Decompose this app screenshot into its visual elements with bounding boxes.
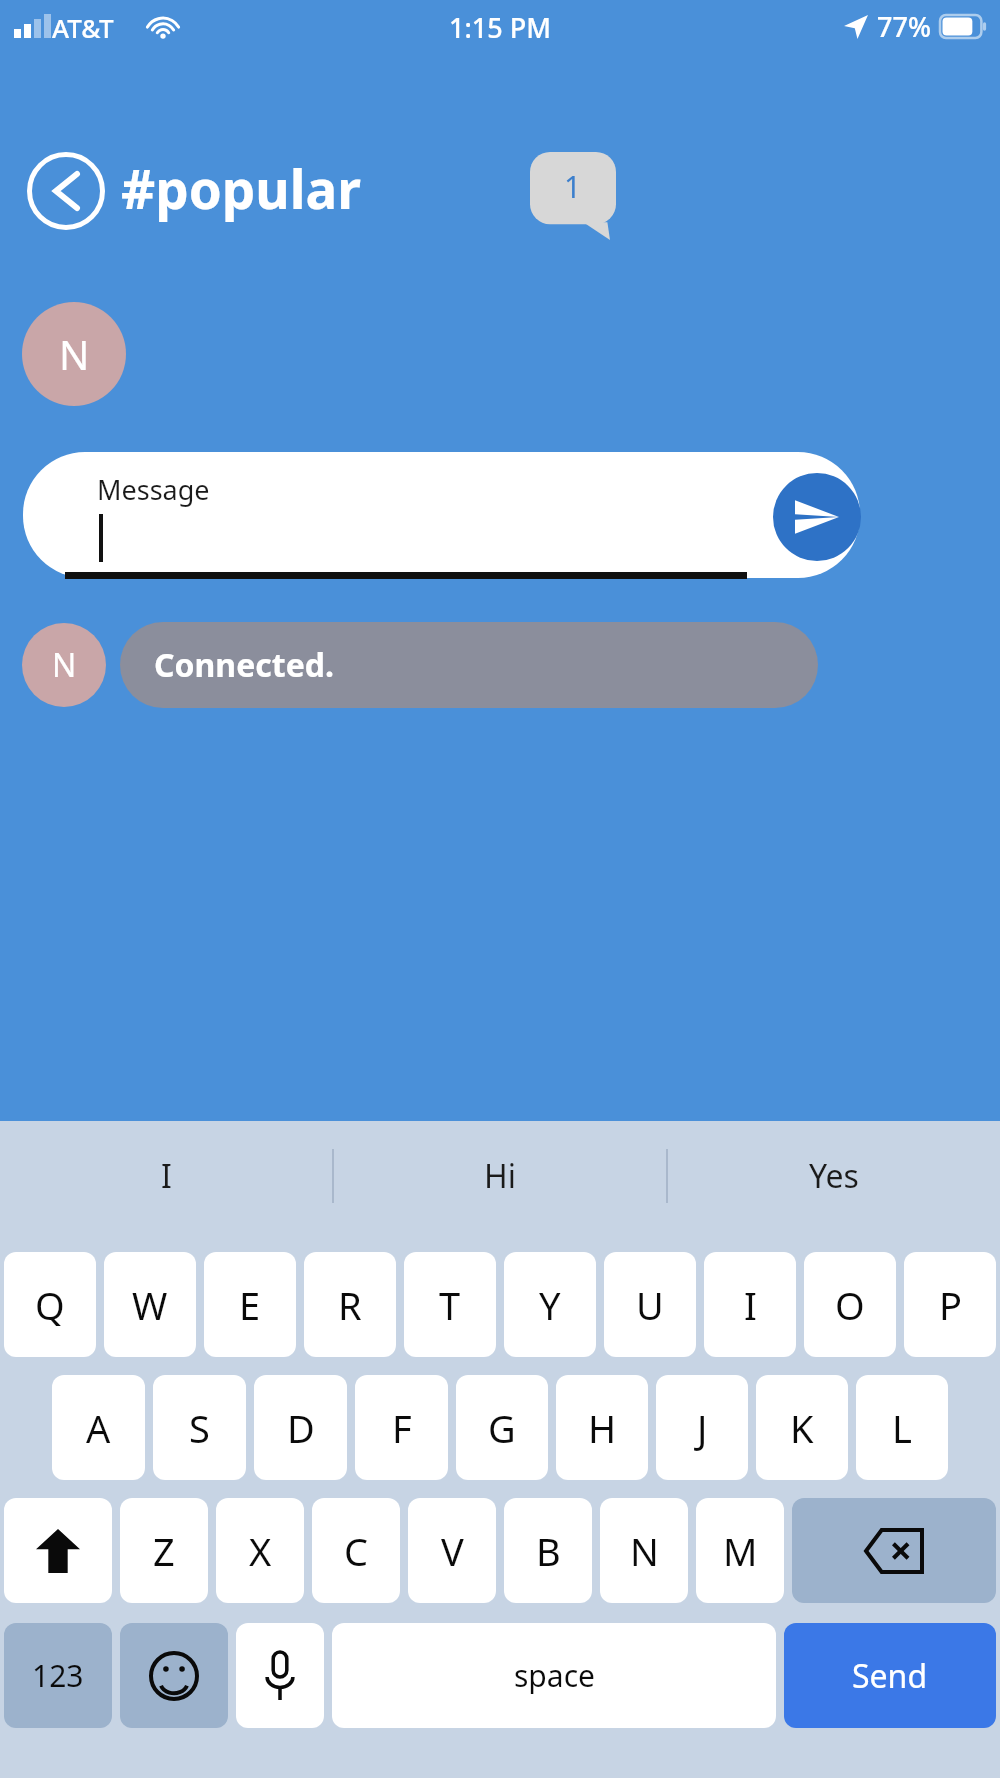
button[interactable]: D	[254, 1375, 347, 1480]
button[interactable]: 123	[4, 1623, 112, 1728]
staticText: W	[132, 1279, 168, 1331]
button[interactable]: 1	[530, 152, 616, 240]
button[interactable]: N	[22, 623, 106, 707]
staticText: space	[514, 1655, 595, 1696]
button[interactable]: Back	[27, 152, 370, 230]
staticText: N	[59, 327, 90, 381]
staticText: 1	[564, 166, 582, 207]
staticText: C	[344, 1525, 369, 1577]
button[interactable]: Shift	[4, 1498, 112, 1603]
other: Back	[27, 152, 105, 230]
staticText: N	[52, 643, 77, 687]
staticText: J	[697, 1402, 708, 1454]
button[interactable]: X	[216, 1498, 304, 1603]
button[interactable]: I	[0, 1121, 332, 1231]
staticText: U	[636, 1279, 664, 1331]
staticText: P	[939, 1279, 962, 1331]
staticText: I	[744, 1279, 757, 1331]
button[interactable]: G	[456, 1375, 548, 1480]
staticText: D	[287, 1402, 315, 1454]
button[interactable]: N	[600, 1498, 688, 1603]
staticText: Z	[153, 1525, 175, 1577]
button[interactable]: space	[332, 1623, 776, 1728]
button[interactable]: O	[804, 1252, 896, 1357]
button[interactable]: M	[696, 1498, 784, 1603]
button[interactable]: Hi	[334, 1121, 666, 1231]
button[interactable]: Emoji	[120, 1623, 228, 1728]
staticText: AT&T	[52, 10, 114, 45]
staticText: 77%	[877, 8, 931, 45]
staticText: H	[588, 1402, 617, 1454]
button[interactable]: Dictate	[236, 1623, 324, 1728]
button[interactable]: W	[104, 1252, 196, 1357]
button[interactable]: T	[404, 1252, 496, 1357]
staticText: I	[161, 1154, 172, 1198]
button[interactable]: Z	[120, 1498, 208, 1603]
button[interactable]: U	[604, 1252, 696, 1357]
staticText: S	[189, 1402, 210, 1454]
button[interactable]: Send	[784, 1623, 996, 1728]
button[interactable]: Q	[4, 1252, 96, 1357]
button[interactable]: L	[856, 1375, 948, 1480]
staticText: T	[439, 1279, 461, 1331]
staticText: K	[790, 1402, 814, 1454]
button[interactable]: P	[904, 1252, 996, 1357]
staticText: G	[488, 1402, 516, 1454]
staticText: Yes	[809, 1154, 859, 1198]
button[interactable]: V	[408, 1498, 496, 1603]
staticText: Message	[97, 471, 210, 508]
button[interactable]: C	[312, 1498, 400, 1603]
button[interactable]: Backspace	[792, 1498, 996, 1603]
staticText: L	[892, 1402, 912, 1454]
staticText: E	[239, 1279, 261, 1331]
staticText: X	[249, 1525, 272, 1577]
button[interactable]: R	[304, 1252, 396, 1357]
button[interactable]: N	[22, 302, 126, 406]
staticText: N	[630, 1525, 659, 1577]
staticText: O	[835, 1279, 865, 1331]
staticText: Y	[539, 1279, 561, 1331]
staticText: Send	[852, 1654, 928, 1698]
button[interactable]: Y	[504, 1252, 596, 1357]
button[interactable]: J	[656, 1375, 748, 1480]
button[interactable]: Yes	[668, 1121, 1000, 1231]
button[interactable]: F	[355, 1375, 448, 1480]
staticText: #popular	[121, 152, 362, 224]
staticText: A	[86, 1402, 111, 1454]
staticText: Hi	[484, 1154, 516, 1198]
button[interactable]: B	[504, 1498, 592, 1603]
button[interactable]: S	[153, 1375, 246, 1480]
button[interactable]: E	[204, 1252, 296, 1357]
staticText: B	[536, 1525, 561, 1577]
staticText: 1:15 PM	[449, 9, 551, 46]
staticText: V	[441, 1525, 464, 1577]
staticText: M	[723, 1525, 758, 1577]
button[interactable]: Send message	[773, 473, 861, 561]
staticText: Q	[35, 1279, 65, 1331]
staticText: F	[392, 1402, 412, 1454]
button[interactable]: Connected.	[120, 622, 818, 708]
button[interactable]: K	[756, 1375, 848, 1480]
staticText: R	[338, 1279, 362, 1331]
button[interactable]: H	[556, 1375, 648, 1480]
staticText: Connected.	[154, 643, 334, 687]
button[interactable]: A	[52, 1375, 145, 1480]
staticText: 123	[32, 1655, 84, 1696]
button[interactable]: I	[704, 1252, 796, 1357]
